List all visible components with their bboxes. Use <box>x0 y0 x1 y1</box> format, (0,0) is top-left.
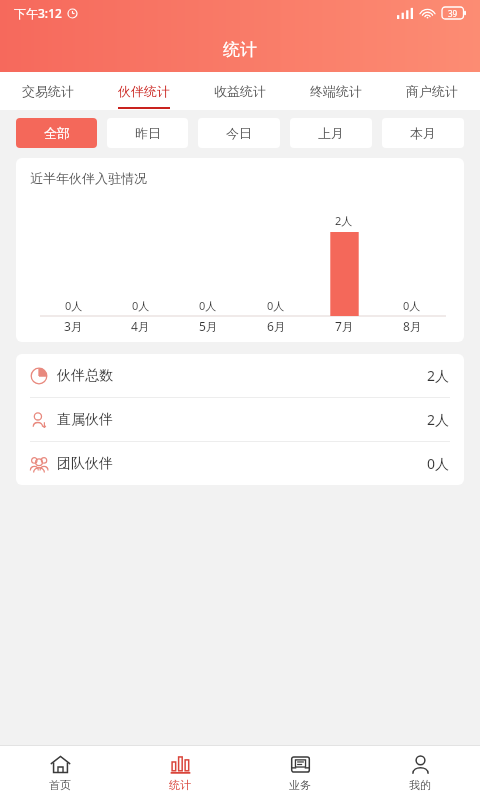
staticText: 4月 <box>131 318 150 334</box>
button[interactable]: 交易统计 <box>0 72 96 110</box>
staticText: 上月 <box>318 125 344 141</box>
staticText: 我的 <box>409 778 431 792</box>
staticText: 0人 <box>65 298 83 313</box>
button[interactable]: 伙伴总数 <box>16 354 464 397</box>
staticText: 统计 <box>223 39 257 60</box>
staticText: 0人 <box>403 298 421 313</box>
staticText: 0人 <box>199 298 217 313</box>
button[interactable]: 上月 <box>290 118 372 148</box>
button[interactable]: 团队伙伴 <box>16 442 464 485</box>
staticText: 2人 <box>427 410 450 429</box>
staticText: 交易统计 <box>22 83 74 99</box>
button[interactable]: 昨日 <box>107 118 188 148</box>
staticText: 商户统计 <box>406 83 458 99</box>
button[interactable]: 直属伙伴 <box>16 398 464 441</box>
button[interactable]: 统计 <box>120 746 240 800</box>
staticText: 昨日 <box>135 125 161 141</box>
staticText: 终端统计 <box>310 83 362 99</box>
button[interactable]: 我的 <box>360 746 480 800</box>
staticText: 统计 <box>169 778 191 792</box>
staticText: 全部 <box>44 125 70 141</box>
staticText: 6月 <box>267 318 286 334</box>
button[interactable]: 今日 <box>198 118 280 148</box>
staticText: 直属伙伴 <box>57 411 113 429</box>
staticText: 0人 <box>132 298 150 313</box>
staticText: 收益统计 <box>214 83 266 99</box>
staticText: 0人 <box>427 454 450 473</box>
button[interactable]: 伙伴统计 <box>96 72 192 110</box>
staticText: 伙伴统计 <box>118 83 170 99</box>
staticText: 0人 <box>267 298 285 313</box>
staticText: 近半年伙伴入驻情况 <box>30 170 147 186</box>
button[interactable]: 全部 <box>16 118 97 148</box>
button[interactable]: 收益统计 <box>192 72 288 110</box>
staticText: 下午3:12 <box>14 5 62 21</box>
button[interactable]: 本月 <box>382 118 464 148</box>
staticText: 7月 <box>335 318 354 334</box>
staticText: 首页 <box>49 778 71 792</box>
button[interactable]: 首页 <box>0 746 120 800</box>
staticText: 3月 <box>64 318 83 334</box>
staticText: 8月 <box>403 318 422 334</box>
staticText: 5月 <box>199 318 218 334</box>
staticText: 团队伙伴 <box>57 455 113 473</box>
staticText: 今日 <box>226 125 252 141</box>
staticText: 39 <box>448 8 458 19</box>
button[interactable]: 业务 <box>240 746 360 800</box>
staticText: 伙伴总数 <box>57 367 113 385</box>
button[interactable]: 终端统计 <box>288 72 384 110</box>
staticText: 业务 <box>289 778 311 792</box>
staticText: 2人 <box>335 213 353 228</box>
staticText: 本月 <box>410 125 436 141</box>
button[interactable]: 商户统计 <box>384 72 480 110</box>
staticText: 2人 <box>427 366 450 385</box>
